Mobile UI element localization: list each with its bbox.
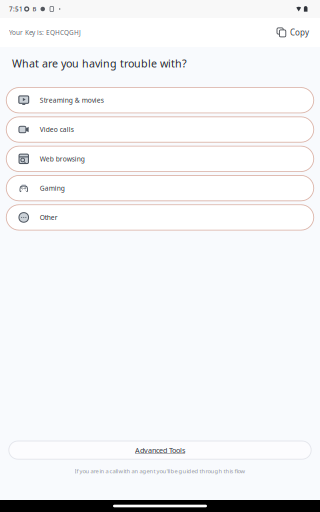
staticText: Web browsing — [40, 154, 85, 163]
button[interactable]: Advanced Tools — [9, 441, 311, 459]
button[interactable]: Streaming & movies — [6, 87, 314, 113]
button[interactable]: Video calls — [6, 117, 314, 142]
staticText: If you are in a call with an agent you'l… — [74, 467, 245, 475]
staticText: Other — [40, 213, 58, 222]
button[interactable]: Copy — [274, 22, 312, 43]
staticText: What are you having trouble with? — [12, 56, 187, 70]
staticText: Video calls — [40, 125, 74, 134]
staticText: Your Key is: EQHCQGHJ — [9, 28, 81, 37]
button[interactable]: Web browsing — [6, 146, 314, 171]
staticText: Streaming & movies — [40, 96, 104, 105]
button[interactable]: Other — [6, 205, 314, 230]
button[interactable]: Gaming — [6, 175, 314, 201]
staticText: B — [32, 5, 36, 13]
staticText: Gaming — [40, 184, 65, 193]
staticText: 7:51 — [9, 5, 23, 13]
staticText: Copy — [290, 27, 309, 38]
staticText: Advanced Tools — [135, 445, 185, 455]
